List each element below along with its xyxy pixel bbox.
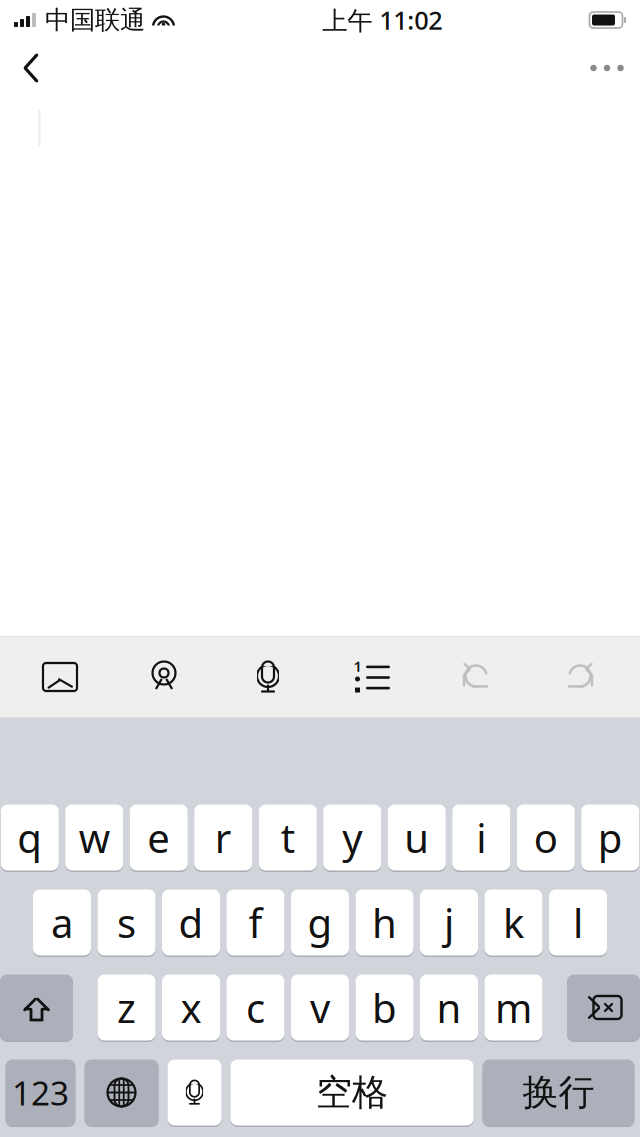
staticText: 空格 [316,1070,388,1115]
button[interactable]: Switch keyboard [84,1058,158,1127]
staticText: l [573,896,583,949]
staticText: w [79,811,110,864]
button[interactable]: List formatting [320,637,424,717]
button[interactable]: l [549,888,607,957]
button[interactable]: k [484,888,542,957]
button[interactable]: z [97,973,155,1042]
staticText: k [503,896,524,949]
button[interactable]: h [355,888,413,957]
staticText: p [598,811,623,864]
button[interactable]: e [130,803,188,872]
staticText: f [248,896,262,949]
button[interactable]: Voice input [216,637,320,717]
button[interactable]: t [259,803,317,872]
button[interactable]: b [355,973,413,1042]
staticText: d [178,896,203,949]
button[interactable]: 换行 [482,1058,634,1127]
button[interactable]: Dictation [167,1058,221,1127]
staticText: e [147,811,170,864]
button[interactable]: f [226,888,284,957]
button[interactable]: x [162,973,220,1042]
button[interactable]: Insert photo [8,637,112,717]
staticText: b [372,981,397,1034]
button[interactable]: y [323,803,381,872]
staticText: s [117,896,136,949]
staticText: 中国联通 [45,4,145,35]
staticText: v [310,981,330,1034]
button[interactable]: n [420,973,478,1042]
button[interactable]: r [194,803,252,872]
staticText: t [281,811,295,864]
button[interactable]: Shift [0,973,73,1042]
staticText: x [180,981,201,1034]
staticText: z [117,981,136,1034]
staticText: h [372,896,397,949]
button[interactable]: More options [574,40,640,96]
staticText: y [342,811,362,864]
staticText: 上午 11:02 [322,3,442,37]
button[interactable]: q [1,803,59,872]
button[interactable]: j [420,888,478,957]
staticText: u [404,811,429,864]
button[interactable]: Redo [528,637,632,717]
button[interactable]: 空格 [230,1058,473,1127]
staticText: c [246,981,265,1034]
button[interactable]: w [65,803,123,872]
staticText: o [534,811,558,864]
button[interactable]: Back [0,40,62,96]
staticText: m [495,981,532,1034]
staticText: q [17,811,42,864]
staticText: n [436,981,461,1034]
staticText: g [307,896,332,949]
button[interactable]: g [291,888,349,957]
staticText: a [51,896,73,949]
button[interactable]: Delete [567,973,640,1042]
button[interactable]: a [33,888,91,957]
button[interactable]: v [291,973,349,1042]
button[interactable]: o [517,803,575,872]
staticText: 换行 [522,1070,594,1115]
button[interactable]: i [452,803,510,872]
button[interactable]: u [388,803,446,872]
button[interactable]: p [581,803,639,872]
button[interactable]: 123 [5,1058,75,1127]
button[interactable]: Undo [424,637,528,717]
button[interactable]: m [484,973,542,1042]
staticText: 1 [353,656,361,676]
button[interactable]: s [97,888,155,957]
staticText: j [444,896,454,949]
button[interactable]: d [162,888,220,957]
button[interactable]: Add location [112,637,216,717]
staticText: i [476,811,486,864]
button[interactable]: c [226,973,284,1042]
staticText: 123 [12,1070,69,1115]
staticText: r [215,811,232,864]
